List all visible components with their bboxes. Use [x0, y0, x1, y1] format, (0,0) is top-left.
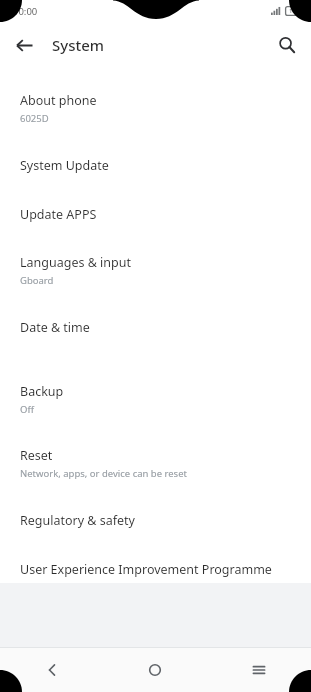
button[interactable]: Update APPS [0, 199, 311, 233]
staticText: 10:00 [13, 5, 38, 18]
button[interactable]: About phone [0, 85, 311, 127]
staticText: Network, apps, or device can be reset [20, 467, 187, 480]
staticText: 100 [289, 7, 299, 15]
staticText: Backup [20, 383, 64, 400]
button[interactable]: System Update [0, 150, 311, 184]
button[interactable]: Date & time [0, 312, 311, 346]
staticText: System [52, 35, 105, 55]
staticText: Reset [20, 447, 53, 464]
staticText: 6025D [20, 112, 49, 125]
button[interactable]: Backup [0, 376, 311, 418]
button[interactable]: Back [6, 27, 42, 63]
button[interactable]: User Experience Improvement Programme [0, 554, 311, 588]
button[interactable]: Recent apps [207, 648, 311, 692]
button[interactable]: Back [0, 648, 103, 692]
button[interactable]: Languages & input [0, 247, 311, 289]
staticText: User Experience Improvement Programme [20, 561, 272, 578]
button[interactable]: Regulatory & safety [0, 505, 311, 539]
staticText: Languages & input [20, 254, 131, 271]
button[interactable]: Home [103, 648, 207, 692]
staticText: Update APPS [20, 206, 97, 223]
staticText: Off [20, 403, 34, 416]
button[interactable]: Search [269, 27, 305, 63]
staticText: System Update [20, 157, 109, 174]
staticText: About phone [20, 92, 97, 109]
staticText: Date & time [20, 319, 90, 336]
staticText: Gboard [20, 274, 54, 287]
button[interactable]: Reset [0, 440, 311, 482]
staticText: Regulatory & safety [20, 512, 135, 529]
